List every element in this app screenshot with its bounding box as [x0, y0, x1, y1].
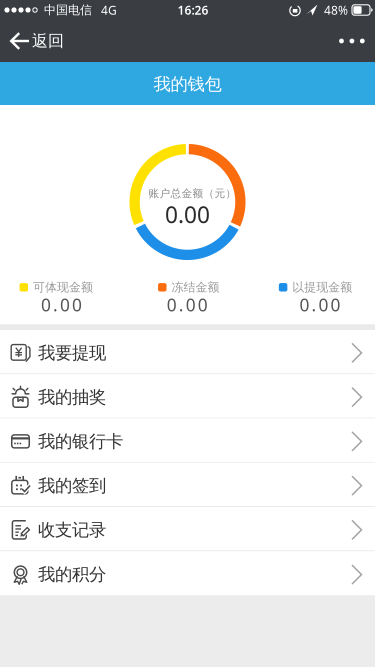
staticText: 0.00: [41, 293, 82, 316]
staticText: 返回: [32, 31, 64, 51]
button[interactable]: 我要提现: [0, 330, 375, 374]
staticText: 可体现金额: [33, 280, 93, 295]
button[interactable]: 我的积分: [0, 551, 375, 595]
staticText: 冻结金额: [172, 280, 220, 295]
staticText: 收支记录: [38, 519, 106, 540]
staticText: 我的签到: [38, 475, 106, 496]
staticText: 0.00: [167, 293, 208, 316]
staticText: 48%: [324, 2, 348, 18]
staticText: 我的银行卡: [38, 431, 123, 452]
staticText: 我的钱包: [153, 74, 221, 95]
button[interactable]: 我的签到: [0, 463, 375, 507]
staticText: 4G: [101, 2, 117, 18]
staticText: 我的积分: [38, 564, 106, 585]
staticText: 中国电信: [44, 3, 92, 17]
staticText: 账户总金额（元）: [148, 187, 236, 200]
button[interactable]: 收支记录: [0, 507, 375, 551]
staticText: 以提现金额: [292, 280, 352, 295]
staticText: 我要提现: [38, 342, 106, 363]
button[interactable]: 我的抽奖: [0, 374, 375, 418]
staticText: 我的抽奖: [38, 386, 106, 408]
button[interactable]: 我的银行卡: [0, 418, 375, 463]
staticText: 0.00: [165, 199, 210, 229]
button[interactable]: 更多: [339, 24, 375, 58]
staticText: 0.00: [299, 293, 340, 316]
button[interactable]: 返回: [0, 22, 64, 59]
staticText: 16:26: [177, 2, 208, 18]
